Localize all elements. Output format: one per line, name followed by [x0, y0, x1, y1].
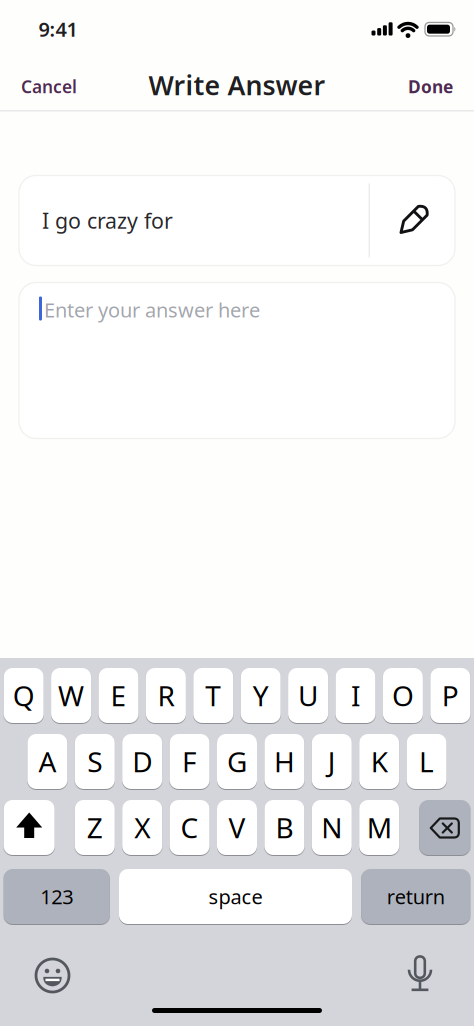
staticText: O — [392, 677, 414, 714]
staticText: A — [38, 743, 56, 780]
button[interactable]: C — [170, 800, 210, 855]
staticText: L — [419, 743, 434, 780]
button[interactable]: O — [383, 668, 423, 723]
staticText: D — [132, 743, 152, 780]
staticText: N — [321, 809, 342, 846]
staticText: return — [387, 883, 445, 910]
staticText: 123 — [40, 883, 73, 910]
button[interactable]: J — [312, 734, 352, 789]
button[interactable]: I — [335, 668, 375, 723]
staticText: Y — [253, 677, 269, 714]
staticText: M — [367, 809, 392, 846]
staticText: F — [182, 743, 197, 780]
staticText: W — [58, 677, 84, 714]
staticText: Enter your answer here — [44, 296, 260, 323]
button[interactable]: Cancel — [0, 61, 77, 112]
staticText: G — [227, 743, 247, 780]
button[interactable]: Q — [4, 668, 44, 723]
staticText: U — [298, 677, 318, 714]
button[interactable]: N — [312, 800, 352, 855]
button[interactable]: G — [217, 734, 257, 789]
button[interactable]: A — [27, 734, 67, 789]
button[interactable]: Dictate — [400, 953, 440, 993]
staticText: X — [134, 809, 150, 846]
button[interactable]: V — [217, 800, 257, 855]
staticText: Cancel — [21, 75, 77, 98]
staticText: I — [351, 677, 360, 714]
button[interactable]: Z — [75, 800, 115, 855]
staticText: R — [157, 677, 174, 714]
staticText: S — [87, 743, 102, 780]
staticText: H — [274, 743, 295, 780]
button[interactable]: Enter your answer here — [19, 282, 455, 438]
button[interactable]: 123 — [4, 869, 110, 924]
staticText: V — [228, 809, 245, 846]
button[interactable]: K — [359, 734, 399, 789]
staticText: E — [110, 677, 126, 714]
staticText: space — [208, 883, 262, 910]
button[interactable]: S — [75, 734, 115, 789]
button[interactable]: D — [122, 734, 162, 789]
button[interactable]: X — [122, 800, 162, 855]
button[interactable]: T — [193, 668, 233, 723]
button[interactable]: L — [407, 734, 447, 789]
button[interactable]: U — [288, 668, 328, 723]
button[interactable]: F — [170, 734, 210, 789]
button[interactable]: Shift — [4, 800, 55, 855]
staticText: B — [275, 809, 293, 846]
staticText: I go crazy for — [42, 206, 173, 235]
staticText: K — [371, 743, 388, 780]
staticText: Z — [87, 809, 103, 846]
button[interactable]: R — [146, 668, 186, 723]
staticText: C — [181, 809, 199, 846]
staticText: T — [205, 677, 221, 714]
staticText: J — [328, 743, 336, 780]
staticText: Done — [408, 75, 453, 98]
button[interactable]: Done — [408, 61, 474, 112]
button[interactable]: E — [98, 668, 138, 723]
button[interactable]: W — [51, 668, 91, 723]
button[interactable]: H — [264, 734, 304, 789]
staticText: Q — [13, 677, 35, 714]
staticText: Write Answer — [148, 67, 325, 103]
button[interactable]: Emoji — [32, 955, 72, 995]
button[interactable]: Y — [241, 668, 281, 723]
button[interactable]: Change prompt — [370, 175, 455, 265]
button[interactable]: M — [359, 800, 399, 855]
button[interactable]: B — [264, 800, 304, 855]
button[interactable]: Delete — [419, 800, 470, 855]
button[interactable]: space — [119, 869, 352, 924]
staticText: 9:41 — [38, 16, 77, 42]
button[interactable]: return — [361, 869, 470, 924]
staticText: P — [442, 677, 459, 714]
button[interactable]: P — [430, 668, 470, 723]
